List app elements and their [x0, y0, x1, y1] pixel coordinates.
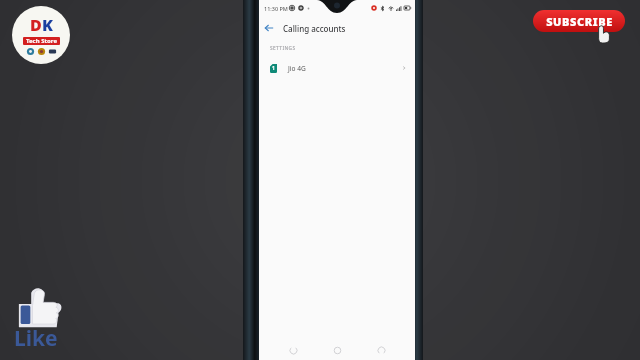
staticText: Like — [14, 324, 58, 353]
staticText: Tech Store — [26, 37, 57, 45]
staticText: SETTINGS — [270, 45, 296, 52]
staticText: Jio 4G — [288, 64, 306, 73]
button[interactable]: Like — [12, 288, 68, 350]
button[interactable]: Back — [286, 343, 300, 357]
staticText: 1 — [272, 65, 275, 72]
button[interactable]: SUBSCRIBE — [533, 10, 625, 32]
staticText: D — [30, 14, 42, 36]
staticText: 11:30 PM — [264, 5, 288, 12]
staticText: K — [42, 14, 53, 36]
button[interactable]: Back — [259, 18, 279, 38]
button[interactable]: 1 — [259, 56, 415, 80]
button[interactable]: DK Tech Store logo — [12, 6, 70, 64]
staticText: SUBSCRIBE — [546, 14, 613, 29]
button[interactable]: Recents — [374, 343, 388, 357]
button[interactable]: Home — [330, 343, 344, 357]
staticText: Calling accounts — [283, 23, 346, 34]
